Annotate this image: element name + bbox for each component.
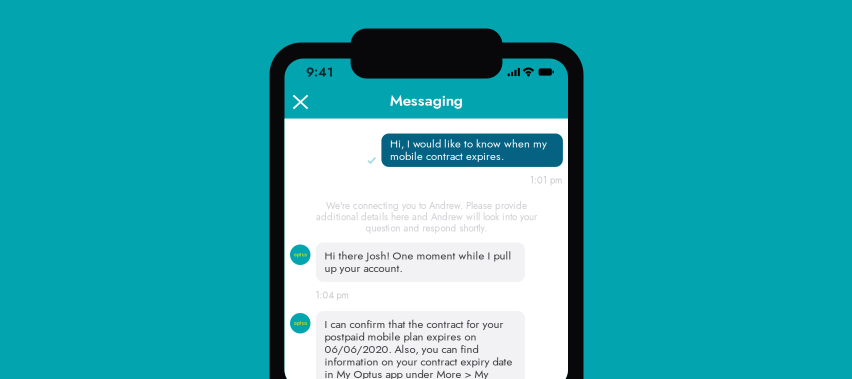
staticText: I can confirm that the contract for your… [324, 318, 512, 379]
staticText: optus [294, 319, 307, 327]
staticText: optus [294, 251, 307, 258]
staticText: Hi, I would like to know when my mobile … [390, 137, 547, 162]
staticText: We're connecting you to Andrew. Please p… [316, 200, 537, 234]
staticText: 9:41 [306, 63, 333, 81]
button[interactable]: Close [285, 81, 315, 120]
staticText: 1:04 pm [315, 288, 348, 302]
staticText: 1:01 pm [530, 173, 562, 187]
staticText: Messaging [390, 89, 463, 111]
staticText: Hi there Josh! One moment while I pull u… [324, 249, 511, 274]
